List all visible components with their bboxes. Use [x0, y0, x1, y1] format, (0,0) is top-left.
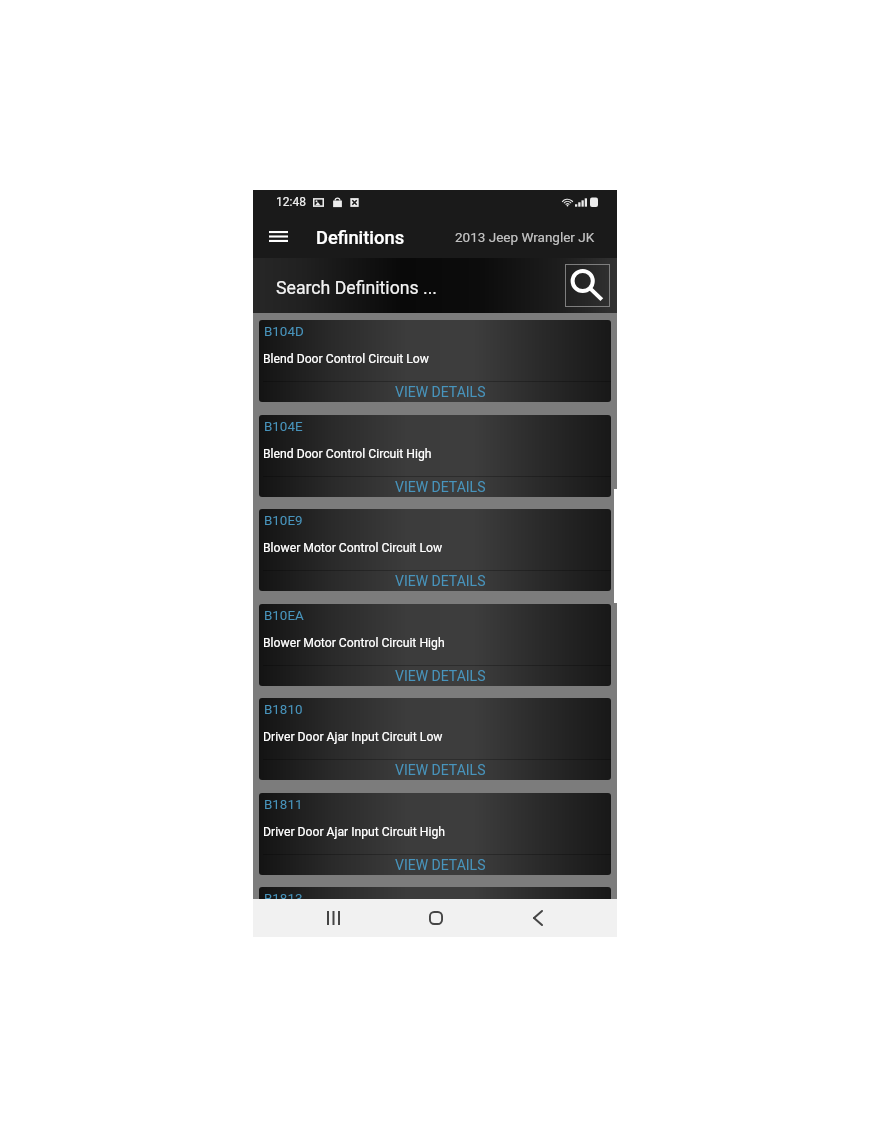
button[interactable]: Recent apps [303, 899, 364, 937]
button[interactable]: Back [507, 899, 568, 937]
button[interactable]: VIEW DETAILS [385, 571, 496, 591]
staticText: B10EA [264, 608, 304, 624]
button[interactable]: VIEW DETAILS [385, 666, 496, 686]
staticText: B1810 [264, 702, 303, 718]
staticText: 2013 Jeep Wrangler JK [455, 229, 595, 245]
button[interactable]: VIEW DETAILS [385, 382, 496, 402]
button[interactable]: VIEW DETAILS [385, 760, 496, 780]
staticText: VIEW DETAILS [395, 762, 486, 778]
button[interactable]: Search [565, 264, 610, 307]
button[interactable]: B1811 [259, 793, 611, 875]
staticText: B1813 [264, 891, 303, 899]
button[interactable]: VIEW DETAILS [385, 855, 496, 875]
staticText: Blower Motor Control Circuit Low [263, 541, 443, 555]
button[interactable]: B10E9 [259, 509, 611, 591]
button[interactable]: B104D [259, 320, 611, 402]
staticText: Driver Door Ajar Input Circuit High [263, 825, 446, 839]
staticText: VIEW DETAILS [395, 479, 486, 495]
button[interactable]: B1813 [259, 887, 611, 899]
staticText: Search Definitions ... [276, 278, 438, 299]
staticText: B104E [264, 419, 303, 435]
staticText: VIEW DETAILS [395, 573, 486, 589]
staticText: Driver Door Ajar Input Circuit Low [263, 730, 443, 744]
button[interactable]: VIEW DETAILS [385, 477, 496, 497]
staticText: B10E9 [264, 513, 303, 529]
button[interactable]: Open navigation menu [257, 214, 299, 258]
staticText: VIEW DETAILS [395, 384, 486, 400]
button[interactable]: B1810 [259, 698, 611, 780]
button[interactable]: Home [405, 899, 466, 937]
staticText: 12:48 [276, 195, 306, 209]
staticText: VIEW DETAILS [395, 668, 486, 684]
staticText: Blower Motor Control Circuit High [263, 636, 445, 650]
button[interactable]: B10EA [259, 604, 611, 686]
staticText: Blend Door Control Circuit High [263, 447, 432, 461]
staticText: Definitions [316, 227, 405, 248]
staticText: Blend Door Control Circuit Low [263, 352, 429, 366]
staticText: VIEW DETAILS [395, 857, 486, 873]
staticText: B104D [264, 324, 304, 340]
button[interactable]: B104E [259, 415, 611, 497]
staticText: B1811 [264, 797, 303, 813]
